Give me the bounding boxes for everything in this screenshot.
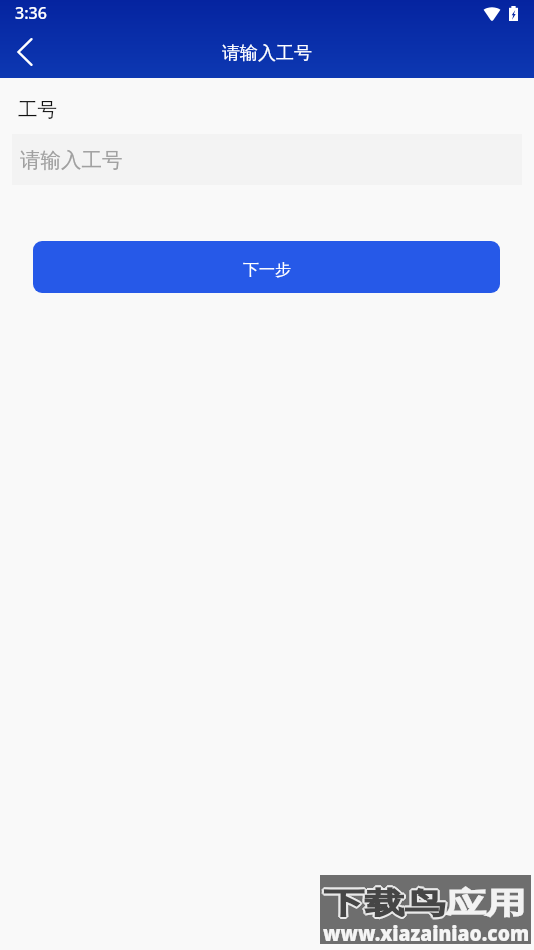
staticText: 请输入工号: [222, 42, 312, 65]
staticText: 下载鸟: [323, 884, 444, 921]
staticText: 3:36: [15, 2, 47, 24]
staticText: www.xiazainiao.com: [323, 919, 530, 948]
staticText: 请输入工号: [20, 147, 123, 173]
staticText: 下载鸟: [324, 883, 445, 920]
staticText: 下载鸟: [324, 887, 445, 924]
staticText: 下载鸟: [326, 885, 447, 922]
staticText: 下一步: [243, 260, 291, 280]
button[interactable]: 请输入工号: [12, 134, 522, 185]
staticText: 下载鸟: [325, 884, 446, 921]
button[interactable]: 下一步: [33, 241, 500, 293]
staticText: 应用: [445, 885, 526, 922]
staticText: 下载鸟: [325, 886, 446, 923]
staticText: 下载鸟: [324, 885, 445, 922]
staticText: 下载鸟: [322, 885, 443, 922]
staticText: 工号: [18, 97, 57, 122]
staticText: 下载鸟: [323, 886, 444, 923]
button[interactable]: Back: [0, 28, 48, 76]
